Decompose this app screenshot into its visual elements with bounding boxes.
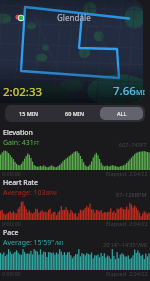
- staticText: Elapsed 2:04:02: [106, 220, 148, 227]
- staticText: 87–128BPM: [116, 191, 147, 198]
- button[interactable]: Pace: [0, 228, 150, 278]
- staticText: 60 MIN: [65, 110, 84, 117]
- button[interactable]: ALL: [100, 107, 143, 120]
- staticText: 7.66: [113, 83, 136, 99]
- staticText: 0:00:00: [2, 270, 21, 277]
- staticText: Elevation: [3, 128, 33, 138]
- staticText: BPM: [46, 190, 57, 197]
- staticText: MI: [136, 88, 145, 98]
- staticText: /MI: [55, 240, 64, 247]
- staticText: Heart Rate: [3, 178, 39, 188]
- staticText: Glendale: [57, 12, 91, 23]
- staticText: FT: [34, 140, 40, 147]
- staticText: 607–745FT: [119, 141, 147, 148]
- staticText: Pace: [3, 228, 19, 238]
- staticText: 15 MIN: [19, 110, 38, 117]
- button[interactable]: Heart Rate: [0, 178, 150, 228]
- staticText: Elapsed 2:04:02: [106, 170, 148, 177]
- staticText: 0:00:00: [2, 220, 21, 227]
- staticText: 20'14"–14'35"/MI: [103, 241, 147, 248]
- button[interactable]: 60 MIN: [53, 107, 96, 120]
- button[interactable]: Elevation: [0, 128, 150, 178]
- staticText: ALL: [117, 110, 127, 117]
- staticText: Average: 15'59": [3, 238, 55, 248]
- staticText: Elapsed 2:04:02: [106, 270, 148, 277]
- staticText: Average: 103: [3, 188, 46, 198]
- button[interactable]: Route map: [0, 0, 143, 103]
- button[interactable]: 15 MIN: [7, 107, 49, 120]
- staticText: Gain: 431: [3, 138, 34, 148]
- staticText: 2:02:33: [3, 84, 43, 100]
- staticText: 0:00:00: [2, 170, 21, 177]
